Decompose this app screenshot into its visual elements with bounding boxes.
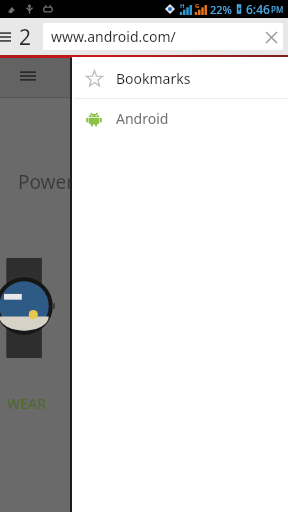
- button[interactable]: Clear: [259, 25, 283, 49]
- staticText: Android: [116, 109, 169, 128]
- button[interactable]: Bookmarks: [72, 59, 288, 98]
- button[interactable]: Menu: [0, 27, 14, 47]
- staticText: Bookmarks: [116, 69, 191, 88]
- button[interactable]: Android: [72, 99, 288, 138]
- staticText: PM: [271, 4, 284, 15]
- button[interactable]: www.android.com/: [43, 23, 283, 50]
- staticText: G: [195, 2, 200, 10]
- staticText: 22%: [210, 2, 232, 17]
- staticText: 2: [19, 23, 32, 52]
- staticText: 6:46: [246, 1, 270, 17]
- staticText: Power: [18, 169, 75, 195]
- staticText: H: [180, 2, 185, 10]
- staticText: www.android.com/: [51, 27, 176, 46]
- staticText: WEAR: [7, 394, 46, 413]
- button[interactable]: 2: [12, 22, 38, 52]
